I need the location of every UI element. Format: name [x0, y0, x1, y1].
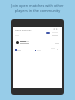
button[interactable]: More options — [52, 27, 58, 31]
button[interactable]: Filter — [46, 32, 50, 34]
staticText: Open matches — [15, 28, 32, 31]
button[interactable] — [13, 40, 62, 46]
staticText: Join open matches with other players in … — [0, 3, 75, 13]
